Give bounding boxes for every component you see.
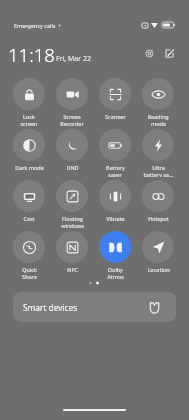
staticText: saver [108,171,122,177]
button[interactable]: Dark mode [7,129,50,177]
staticText: Smart devices [23,302,78,313]
staticText: Quick [22,266,37,273]
staticText: 11:18 [8,42,55,64]
staticText: battery sa... [143,171,174,177]
staticText: Battery [106,164,125,171]
button[interactable]: Edit tiles [163,47,175,59]
button[interactable]: Lock [7,78,50,126]
button[interactable]: Reading [136,78,179,126]
staticText: Reading [147,113,169,120]
staticText: Dark mode [15,164,44,171]
button[interactable]: Settings [143,47,155,59]
staticText: Ultra [152,164,165,171]
staticText: Vibrate [106,215,125,222]
button[interactable]: Smart devices [13,292,176,322]
button[interactable]: Quick [7,231,50,279]
staticText: Lock [23,113,35,120]
button[interactable]: Cast [7,180,50,228]
staticText: Location [147,266,170,273]
staticText: Atmos [107,273,124,279]
button[interactable]: Ultra [136,129,179,177]
button[interactable]: Battery [93,129,136,177]
staticText: Dolby [108,266,123,273]
button[interactable]: Dolby [93,231,136,279]
staticText: mode [151,120,166,126]
button[interactable]: Floating [50,180,93,228]
button[interactable]: NFC [50,231,93,279]
staticText: Scanner [105,113,126,120]
staticText: Recorder [60,120,84,126]
staticText: Emergency calls [14,22,56,29]
staticText: DND [66,164,79,171]
staticText: Fri, Mar 22 [56,54,92,64]
staticText: Screen [63,113,81,120]
staticText: Hotspot [148,215,169,222]
button[interactable]: Vibrate [93,180,136,228]
button[interactable]: Hotspot [136,180,179,228]
button[interactable]: DND [50,129,93,177]
staticText: windows [61,222,84,228]
staticText: Floating [62,215,83,222]
button[interactable]: Location [136,231,179,279]
button[interactable]: Scanner [93,78,136,126]
staticText: screen [20,120,38,126]
button[interactable]: Screen [50,78,93,126]
staticText: Share [22,273,37,279]
staticText: Cast [23,215,35,222]
staticText: NFC [67,266,78,273]
